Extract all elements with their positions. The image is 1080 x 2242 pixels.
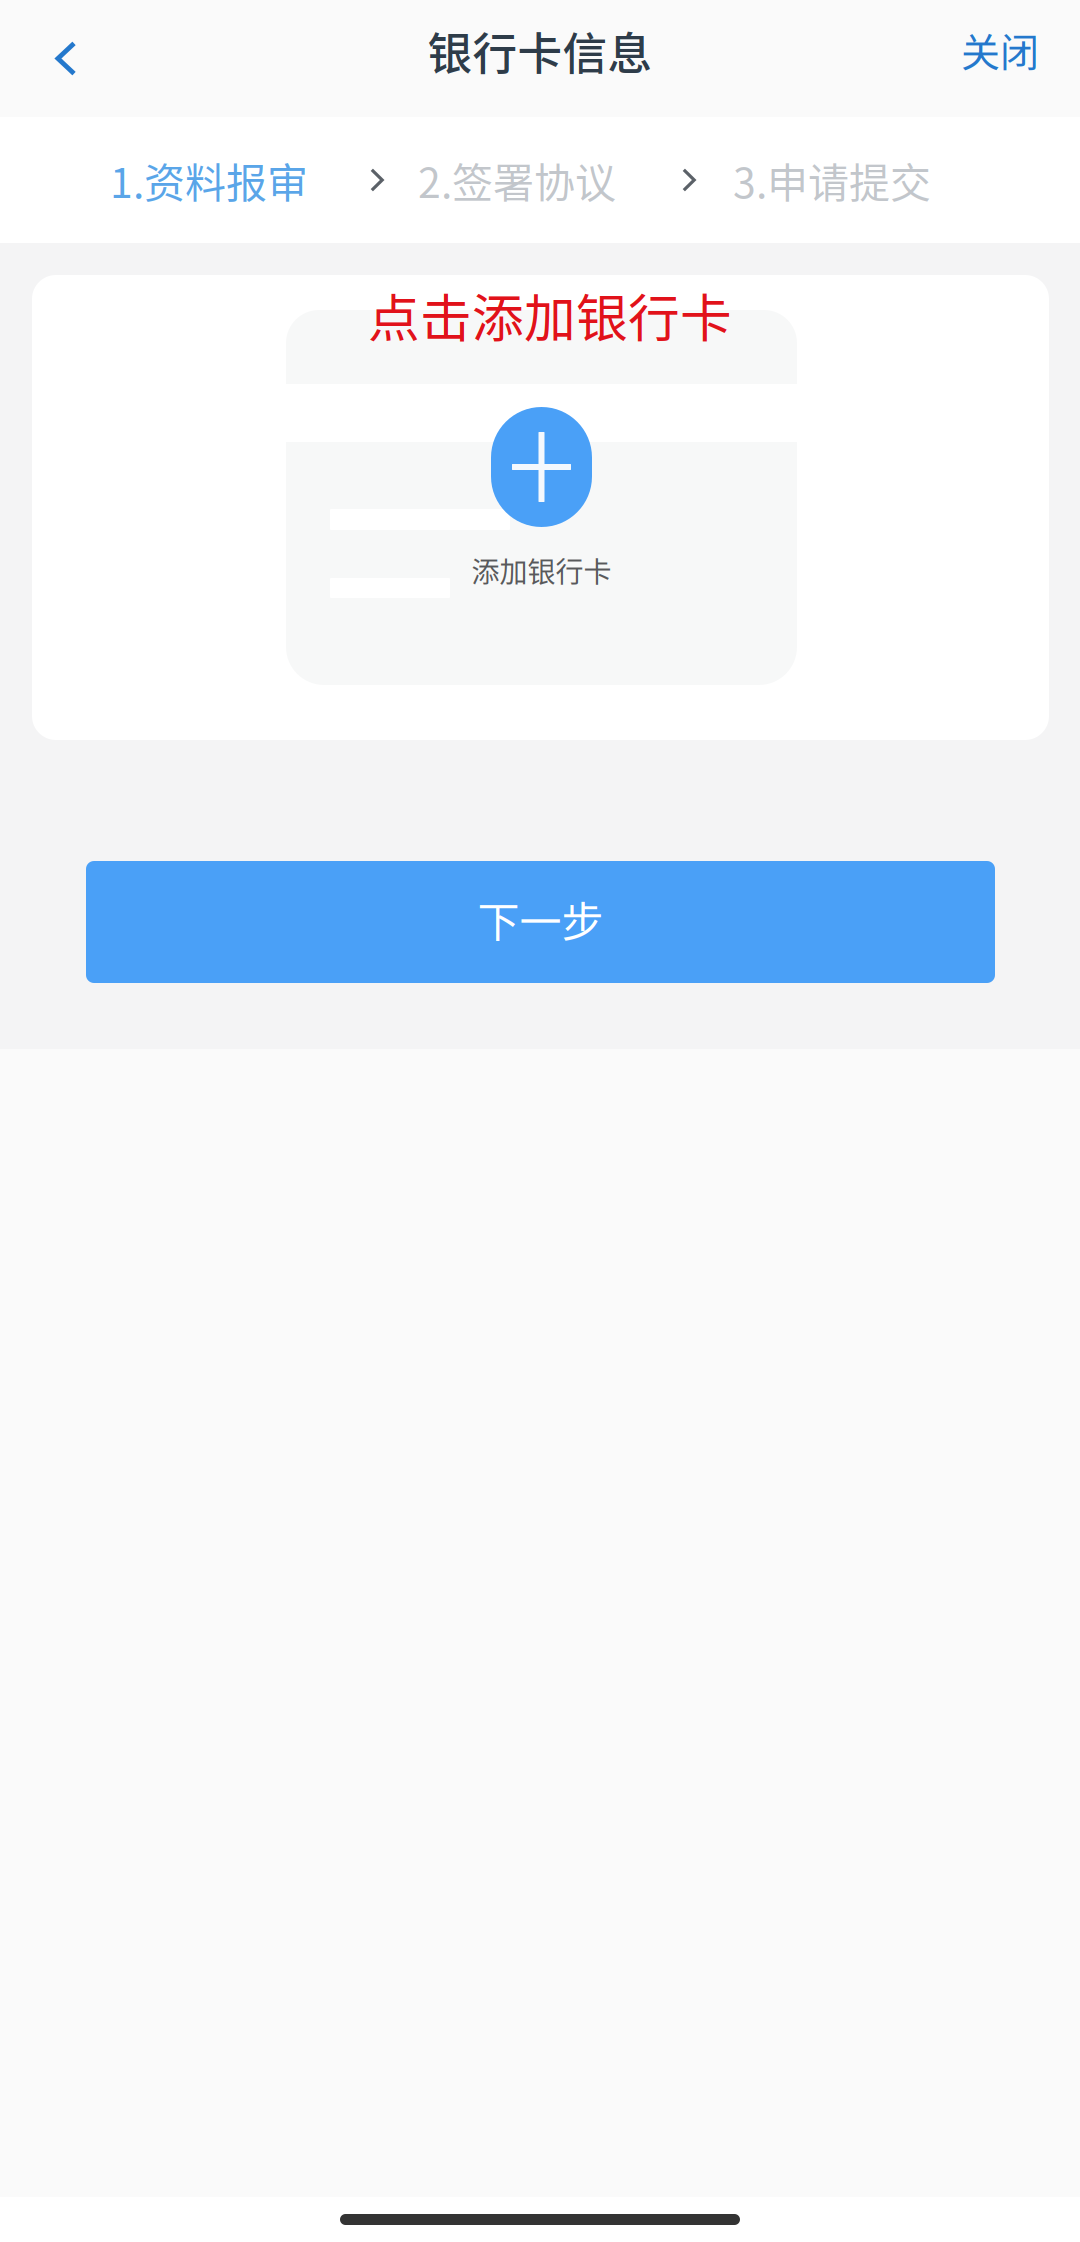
staticText: 下一步 (477, 889, 603, 949)
button[interactable]: Back (18, 10, 114, 106)
button[interactable]: 添加银行卡 (286, 310, 797, 685)
staticText: 2.签署协议 (418, 150, 616, 210)
button[interactable]: 下一步 (86, 861, 995, 983)
staticText: 点击添加银行卡 (368, 277, 732, 352)
button[interactable]: 关闭 (941, 10, 1059, 106)
staticText: 添加银行卡 (471, 550, 611, 590)
staticText: 关闭 (961, 21, 1039, 78)
staticText: 银行卡信息 (427, 18, 652, 83)
staticText: 1.资料报审 (110, 150, 308, 210)
staticText: 3.申请提交 (733, 150, 931, 210)
